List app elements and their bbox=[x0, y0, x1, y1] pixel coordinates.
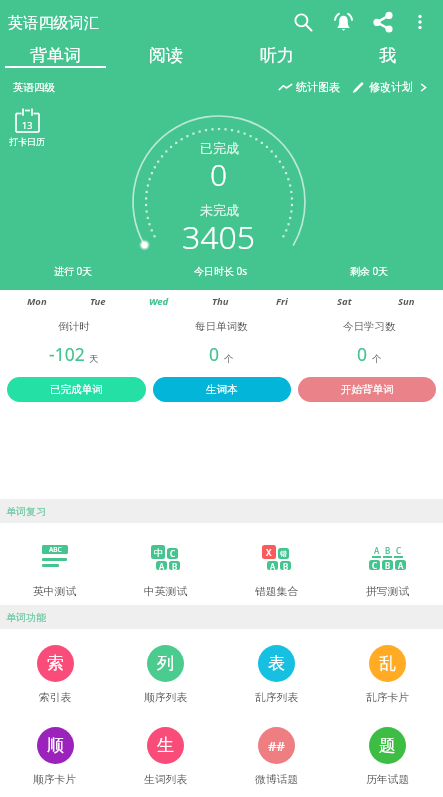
staticText: Sun bbox=[398, 295, 415, 308]
staticText: 个 bbox=[224, 353, 234, 365]
button[interactable]: ABC bbox=[0, 523, 110, 599]
button[interactable]: 题 bbox=[332, 711, 443, 787]
staticText: 已完成 bbox=[200, 140, 239, 156]
button[interactable]: 我 bbox=[332, 45, 443, 66]
staticText: A bbox=[398, 560, 404, 570]
staticText: 单词功能 bbox=[6, 611, 46, 624]
staticText: 列 bbox=[157, 653, 174, 674]
staticText: 修改计划 bbox=[369, 80, 413, 94]
staticText: Mon bbox=[27, 295, 47, 308]
staticText: 13 bbox=[22, 119, 33, 131]
button[interactable]: A bbox=[332, 523, 443, 599]
button[interactable]: 阅读 bbox=[110, 45, 221, 66]
staticText: 今日学习数 bbox=[343, 320, 396, 333]
staticText: 0 bbox=[210, 154, 228, 195]
button[interactable]: 开始背单词 bbox=[298, 377, 436, 402]
staticText: 我 bbox=[379, 45, 396, 66]
staticText: 乱 bbox=[379, 653, 396, 674]
staticText: C bbox=[170, 548, 176, 559]
staticText: 剩余 0天 bbox=[350, 264, 389, 278]
button[interactable]: Notifications bbox=[323, 2, 363, 42]
button[interactable]: Share bbox=[363, 2, 403, 42]
staticText: 0 bbox=[357, 342, 368, 366]
button[interactable]: 修改计划 bbox=[352, 80, 428, 94]
button[interactable]: 顺 bbox=[0, 711, 110, 787]
staticText: ABC bbox=[49, 545, 62, 554]
staticText: Tue bbox=[90, 295, 106, 308]
staticText: 未完成 bbox=[200, 202, 239, 218]
button[interactable]: 表 bbox=[221, 629, 332, 705]
staticText: 个 bbox=[372, 353, 382, 365]
staticText: 英语四级 bbox=[13, 81, 55, 94]
button[interactable]: 中 bbox=[110, 523, 221, 599]
staticText: Wed bbox=[149, 295, 169, 308]
staticText: 生词本 bbox=[206, 383, 238, 396]
staticText: Thu bbox=[212, 295, 229, 308]
staticText: 阅读 bbox=[149, 45, 183, 66]
staticText: 顺序卡片 bbox=[33, 773, 77, 787]
staticText: 英中测试 bbox=[33, 585, 77, 599]
button[interactable]: 背单词 bbox=[0, 45, 110, 66]
staticText: 微博话题 bbox=[255, 773, 299, 787]
staticText: 生词列表 bbox=[144, 773, 188, 787]
button[interactable]: Search bbox=[283, 2, 323, 42]
staticText: 统计图表 bbox=[296, 80, 340, 94]
button[interactable]: 今日学习数 bbox=[295, 312, 443, 366]
button[interactable]: 统计图表 bbox=[279, 80, 340, 94]
staticText: A bbox=[270, 561, 276, 570]
button[interactable]: 13 bbox=[5, 108, 49, 147]
staticText: 生 bbox=[157, 735, 174, 756]
staticText: 索引表 bbox=[39, 691, 72, 705]
staticText: 中英测试 bbox=[144, 585, 188, 599]
staticText: 题 bbox=[379, 735, 396, 756]
staticText: 倒计时 bbox=[58, 320, 90, 333]
staticText: 背单词 bbox=[30, 45, 81, 66]
button[interactable]: 生 bbox=[110, 711, 221, 787]
staticText: 天 bbox=[89, 353, 99, 365]
button[interactable]: 每日单词数 bbox=[147, 312, 295, 366]
staticText: 乱序列表 bbox=[255, 691, 299, 705]
staticText: 3405 bbox=[182, 215, 256, 259]
staticText: B bbox=[283, 561, 289, 570]
staticText: 索 bbox=[47, 653, 64, 674]
staticText: 中 bbox=[154, 547, 163, 558]
staticText: 0 bbox=[209, 342, 220, 366]
staticText: 历年试题 bbox=[366, 773, 410, 787]
button[interactable]: 听力 bbox=[221, 45, 332, 66]
staticText: 单词复习 bbox=[6, 505, 46, 518]
button[interactable]: 生词本 bbox=[153, 377, 291, 402]
button[interactable]: 列 bbox=[110, 629, 221, 705]
button[interactable]: 已完成单词 bbox=[7, 377, 146, 402]
button[interactable]: More options bbox=[403, 5, 437, 39]
staticText: Sat bbox=[337, 295, 352, 308]
staticText: 英语四级词汇 bbox=[8, 13, 100, 32]
staticText: B bbox=[172, 561, 178, 570]
staticText: 打卡日历 bbox=[9, 136, 45, 147]
staticText: 已完成单词 bbox=[50, 383, 103, 396]
staticText: X bbox=[266, 546, 272, 558]
staticText: 顺序列表 bbox=[144, 691, 188, 705]
staticText: C bbox=[396, 545, 402, 556]
staticText: A bbox=[374, 545, 380, 556]
staticText: 今日时长 0s bbox=[194, 264, 248, 278]
staticText: 开始背单词 bbox=[341, 383, 394, 396]
staticText: B bbox=[385, 560, 391, 570]
button[interactable]: X bbox=[221, 523, 332, 599]
staticText: 错 bbox=[280, 549, 287, 558]
staticText: 顺 bbox=[47, 735, 64, 756]
staticText: 表 bbox=[268, 653, 285, 674]
staticText: 听力 bbox=[260, 45, 294, 66]
button[interactable]: 倒计时 bbox=[0, 312, 147, 366]
staticText: 进行 0天 bbox=[54, 264, 93, 278]
staticText: 错题集合 bbox=[255, 585, 299, 599]
button[interactable]: 索 bbox=[0, 629, 110, 705]
button[interactable]: 乱 bbox=[332, 629, 443, 705]
staticText: ## bbox=[268, 737, 285, 755]
staticText: A bbox=[159, 561, 165, 570]
staticText: B bbox=[385, 545, 391, 556]
staticText: -102 bbox=[49, 342, 85, 366]
button[interactable]: ## bbox=[221, 711, 332, 787]
staticText: C bbox=[372, 560, 378, 570]
staticText: 每日单词数 bbox=[195, 320, 248, 333]
staticText: 乱序卡片 bbox=[366, 691, 410, 705]
